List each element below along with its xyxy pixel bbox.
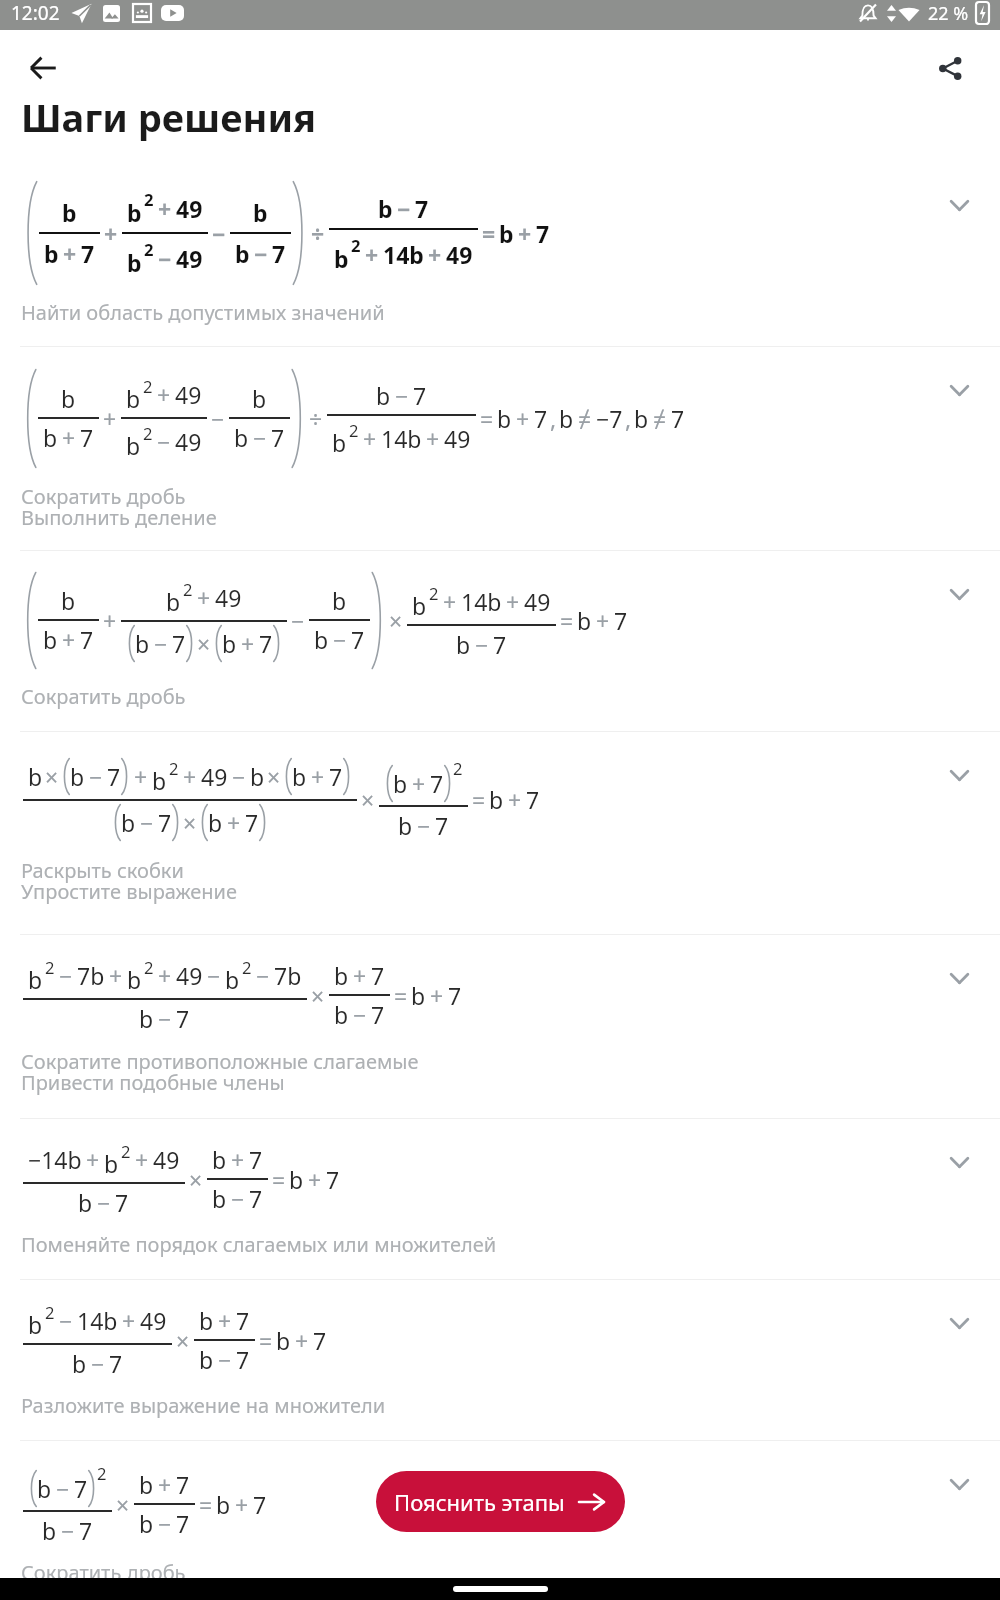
- staticText: 7: [176, 1508, 190, 1539]
- staticText: −: [395, 380, 409, 411]
- button[interactable]: b: [0, 732, 1000, 935]
- staticText: 2: [349, 419, 359, 442]
- staticText: +: [363, 423, 377, 454]
- button[interactable]: Back: [20, 45, 66, 91]
- staticText: 7: [79, 1515, 93, 1546]
- staticText: 49: [524, 586, 551, 617]
- staticText: 2: [144, 238, 154, 261]
- staticText: +: [596, 605, 610, 636]
- staticText: b: [253, 197, 268, 228]
- staticText: b: [559, 403, 574, 434]
- staticText: =: [259, 1325, 273, 1356]
- staticText: +: [426, 423, 440, 454]
- staticText: 7: [326, 1164, 340, 1195]
- button[interactable]: Expand step: [936, 1300, 982, 1346]
- staticText: −: [56, 1473, 70, 1504]
- staticText: 7: [172, 628, 186, 659]
- staticText: 7: [534, 403, 548, 434]
- staticText: 49: [201, 761, 228, 792]
- staticText: 2: [453, 757, 463, 780]
- button[interactable]: Expand step: [936, 1461, 982, 1507]
- button[interactable]: Expand step: [936, 1139, 982, 1185]
- staticText: 7: [259, 628, 273, 659]
- staticText: +: [109, 960, 123, 991]
- staticText: b: [634, 403, 649, 434]
- staticText: ×: [197, 628, 211, 659]
- staticText: −: [158, 1508, 172, 1539]
- staticText: 7: [115, 1187, 129, 1218]
- staticText: 7: [80, 422, 94, 453]
- staticText: +: [365, 239, 379, 270]
- staticText: b: [127, 197, 142, 228]
- staticText: +: [353, 960, 367, 991]
- staticText: b: [127, 247, 142, 278]
- staticText: b: [314, 624, 329, 655]
- staticText: 7: [493, 629, 507, 660]
- staticText: b: [28, 1309, 43, 1340]
- button[interactable]: b: [0, 1280, 1000, 1441]
- staticText: 49: [176, 193, 203, 224]
- button[interactable]: b: [0, 347, 1000, 551]
- staticText: 7: [81, 238, 95, 269]
- staticText: −: [475, 629, 489, 660]
- button[interactable]: b: [0, 1441, 1000, 1600]
- staticText: −: [218, 1344, 232, 1375]
- staticText: +: [197, 582, 211, 613]
- staticText: +: [63, 238, 77, 269]
- button[interactable]: Expand step: [936, 367, 982, 413]
- staticText: +: [412, 768, 426, 799]
- staticText: b: [70, 761, 85, 792]
- staticText: b: [456, 629, 471, 660]
- staticText: b: [222, 628, 237, 659]
- staticText: b: [225, 964, 240, 995]
- button[interactable]: Пояснить этапы: [376, 1471, 625, 1532]
- staticText: +: [518, 218, 532, 249]
- staticText: b: [199, 1305, 214, 1336]
- staticText: b: [61, 585, 76, 616]
- staticText: 2: [183, 578, 193, 601]
- staticText: 7: [176, 1003, 190, 1034]
- staticText: =: [482, 218, 496, 249]
- staticText: −: [91, 1348, 105, 1379]
- button[interactable]: −14b: [0, 1119, 1000, 1280]
- staticText: b: [44, 238, 59, 269]
- staticText: +: [183, 761, 197, 792]
- button[interactable]: b: [0, 935, 1000, 1119]
- staticText: +: [104, 218, 118, 249]
- staticText: 7: [158, 807, 172, 838]
- staticText: 7: [107, 761, 121, 792]
- staticText: 49: [153, 1144, 180, 1175]
- staticText: −: [254, 238, 268, 269]
- staticText: −: [397, 193, 411, 224]
- staticText: +: [62, 624, 76, 655]
- staticText: 7: [430, 768, 444, 799]
- staticText: −: [158, 1003, 172, 1034]
- staticText: 7: [371, 999, 385, 1030]
- staticText: b: [250, 761, 265, 792]
- staticText: −: [211, 403, 225, 434]
- staticText: b: [252, 383, 267, 414]
- staticText: =: [272, 1164, 286, 1195]
- staticText: b: [334, 999, 349, 1030]
- staticText: b: [139, 1003, 154, 1034]
- button[interactable]: Expand step: [936, 182, 982, 228]
- staticText: +: [443, 586, 457, 617]
- button[interactable]: Expand step: [936, 571, 982, 617]
- staticText: +: [122, 1305, 136, 1336]
- button[interactable]: Expand step: [936, 955, 982, 1001]
- staticText: Сократить дробь: [21, 683, 186, 710]
- button[interactable]: b: [0, 162, 1000, 347]
- staticText: b: [208, 807, 223, 838]
- staticText: ≠: [653, 403, 667, 434]
- staticText: 7: [614, 605, 628, 636]
- button[interactable]: Expand step: [936, 752, 982, 798]
- staticText: ×: [183, 807, 197, 838]
- staticText: Сократите противоположные слагаемые Прив…: [21, 1048, 419, 1096]
- staticText: Разложите выражение на множители: [21, 1392, 386, 1419]
- button[interactable]: Share: [927, 45, 973, 91]
- staticText: 2: [45, 1301, 55, 1324]
- staticText: b: [104, 1148, 119, 1179]
- staticText: 7: [272, 238, 286, 269]
- button[interactable]: b: [0, 551, 1000, 732]
- staticText: 7: [176, 1469, 190, 1500]
